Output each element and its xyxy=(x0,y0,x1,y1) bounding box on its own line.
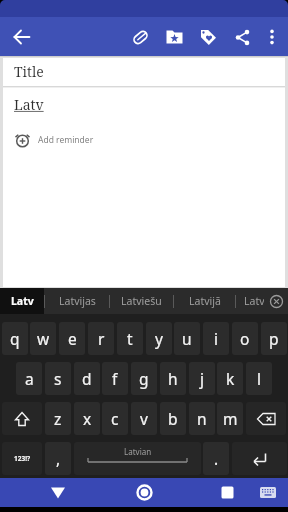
staticText: Add reminder xyxy=(38,134,94,146)
staticText: t xyxy=(127,328,133,349)
button[interactable]: Latviešu xyxy=(110,288,173,314)
staticText: q xyxy=(10,328,20,349)
staticText: u xyxy=(182,328,192,349)
staticText: Latv xyxy=(11,294,34,308)
staticText: Latvijas xyxy=(59,294,96,308)
button[interactable] xyxy=(123,20,157,54)
staticText: Title xyxy=(14,62,44,81)
staticText: a xyxy=(25,368,34,389)
button[interactable]: c xyxy=(102,402,128,435)
staticText: Latv xyxy=(244,294,264,308)
staticText: s xyxy=(54,368,62,389)
button[interactable]: n xyxy=(189,402,215,435)
staticText: v xyxy=(140,408,148,429)
button[interactable]: l xyxy=(246,362,272,395)
button[interactable]: Latv xyxy=(0,288,44,314)
button[interactable] xyxy=(191,20,225,54)
button[interactable]: j xyxy=(189,362,215,395)
button[interactable]: Latvijā xyxy=(174,288,235,314)
button[interactable]: s xyxy=(45,362,71,395)
button[interactable]: t xyxy=(117,322,143,355)
button[interactable]: Latvijas xyxy=(45,288,109,314)
button[interactable]: h xyxy=(160,362,186,395)
button[interactable]: i xyxy=(203,322,229,355)
staticText: 123!? xyxy=(14,454,31,463)
button[interactable]: o xyxy=(232,322,258,355)
button[interactable]: Add reminder xyxy=(3,128,285,152)
staticText: h xyxy=(168,368,178,389)
button[interactable] xyxy=(225,20,259,54)
button[interactable]: d xyxy=(74,362,100,395)
button[interactable]: Latv xyxy=(236,288,264,314)
staticText: c xyxy=(111,408,119,429)
button[interactable]: z xyxy=(45,402,71,435)
button[interactable]: e xyxy=(59,322,85,355)
staticText: r xyxy=(98,328,105,349)
button[interactable]: m xyxy=(217,402,243,435)
button[interactable]: Latvian xyxy=(74,442,201,475)
staticText: n xyxy=(197,408,207,429)
button[interactable]: v xyxy=(131,402,157,435)
button[interactable]: g xyxy=(131,362,157,395)
button[interactable] xyxy=(157,20,191,54)
button[interactable]: f xyxy=(102,362,128,395)
button[interactable] xyxy=(6,21,38,53)
staticText: Latvijā xyxy=(189,294,221,308)
staticText: b xyxy=(168,408,178,429)
staticText: o xyxy=(240,328,250,349)
button[interactable]: y xyxy=(146,322,172,355)
button[interactable]: q xyxy=(2,322,28,355)
staticText: x xyxy=(83,408,92,429)
staticText: k xyxy=(226,368,235,389)
staticText: z xyxy=(54,408,62,429)
staticText: l xyxy=(257,368,261,389)
staticText: Latvian xyxy=(124,446,152,457)
staticText: d xyxy=(82,368,92,389)
button[interactable]: w xyxy=(30,322,56,355)
staticText: f xyxy=(112,368,118,389)
button[interactable]: r xyxy=(88,322,114,355)
staticText: p xyxy=(269,328,279,349)
staticText: . xyxy=(214,448,219,469)
button[interactable]: a xyxy=(16,362,42,395)
staticText: m xyxy=(223,408,238,429)
staticText: Latv xyxy=(14,95,44,114)
staticText: g xyxy=(139,368,149,389)
staticText: e xyxy=(68,328,77,349)
button[interactable]: u xyxy=(174,322,200,355)
staticText: y xyxy=(155,328,163,349)
button[interactable] xyxy=(130,478,158,507)
button[interactable]: , xyxy=(45,442,71,475)
button[interactable] xyxy=(232,442,287,475)
staticText: , xyxy=(56,448,61,469)
button[interactable] xyxy=(255,478,281,507)
button[interactable] xyxy=(213,478,241,507)
button[interactable]: . xyxy=(203,442,229,475)
button[interactable]: k xyxy=(217,362,243,395)
staticText: Latviešu xyxy=(121,294,162,308)
button[interactable] xyxy=(44,478,72,507)
staticText: i xyxy=(214,328,218,349)
button[interactable] xyxy=(259,24,285,50)
staticText: w xyxy=(37,328,50,349)
button[interactable]: p xyxy=(261,322,287,355)
button[interactable]: x xyxy=(74,402,100,435)
button[interactable]: b xyxy=(160,402,186,435)
button[interactable] xyxy=(264,289,288,313)
button[interactable]: 123!? xyxy=(2,442,42,475)
button[interactable] xyxy=(246,402,286,435)
staticText: j xyxy=(200,368,204,389)
button[interactable] xyxy=(2,402,42,435)
